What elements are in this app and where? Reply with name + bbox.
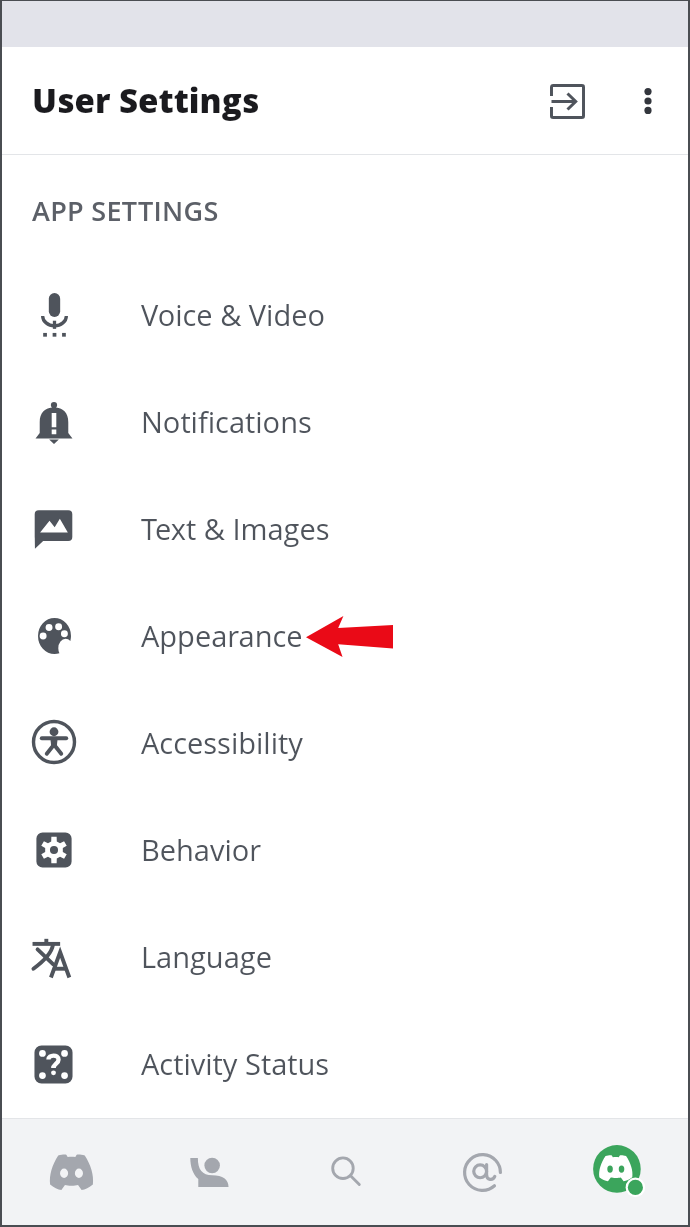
button[interactable]: Mentions — [414, 1119, 551, 1225]
button[interactable]: Friends — [140, 1119, 277, 1225]
button[interactable]: Home — [2, 1119, 140, 1225]
button[interactable]: Accessibility — [2, 689, 688, 796]
button[interactable]: Search — [277, 1119, 414, 1225]
staticText: Accessibility — [141, 723, 303, 762]
button[interactable]: Notifications — [2, 368, 688, 475]
button[interactable]: Profile — [551, 1119, 688, 1225]
button[interactable]: Switch accounts — [540, 74, 594, 128]
staticText: Language — [141, 937, 272, 976]
staticText: Text & Images — [141, 509, 330, 548]
button[interactable]: More options — [624, 77, 672, 125]
button[interactable]: Activity Status — [2, 1010, 688, 1117]
staticText: Voice & Video — [141, 295, 325, 334]
staticText: Notifications — [141, 402, 312, 441]
button[interactable]: Text & Images — [2, 475, 688, 582]
staticText: Behavior — [141, 830, 262, 869]
staticText: Appearance — [141, 616, 303, 655]
staticText: Activity Status — [141, 1044, 330, 1083]
staticText: User Settings — [32, 78, 260, 123]
button[interactable]: Behavior — [2, 796, 688, 903]
button[interactable]: Appearance — [2, 582, 688, 689]
staticText: APP SETTINGS — [32, 192, 219, 229]
button[interactable]: Voice & Video — [2, 261, 688, 368]
button[interactable]: Language — [2, 903, 688, 1010]
